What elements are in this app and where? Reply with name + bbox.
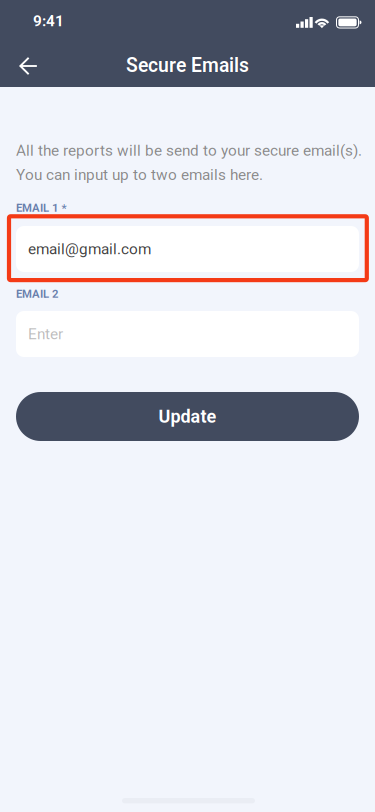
staticText: All the reports will be send to your sec… (16, 141, 362, 159)
staticText: email@gmail.com (28, 240, 151, 258)
button[interactable]: Update (16, 392, 359, 441)
staticText: EMAIL 2 (16, 287, 59, 300)
staticText: EMAIL 1 (16, 201, 59, 214)
staticText: Update (158, 406, 216, 427)
staticText: Secure Emails (126, 54, 249, 77)
staticText: * (61, 202, 66, 215)
staticText: You can input up to two emails here. (16, 166, 263, 184)
staticText: 9:41 (33, 12, 64, 30)
button[interactable]: Back (7, 44, 51, 87)
staticText: Enter (28, 325, 63, 343)
